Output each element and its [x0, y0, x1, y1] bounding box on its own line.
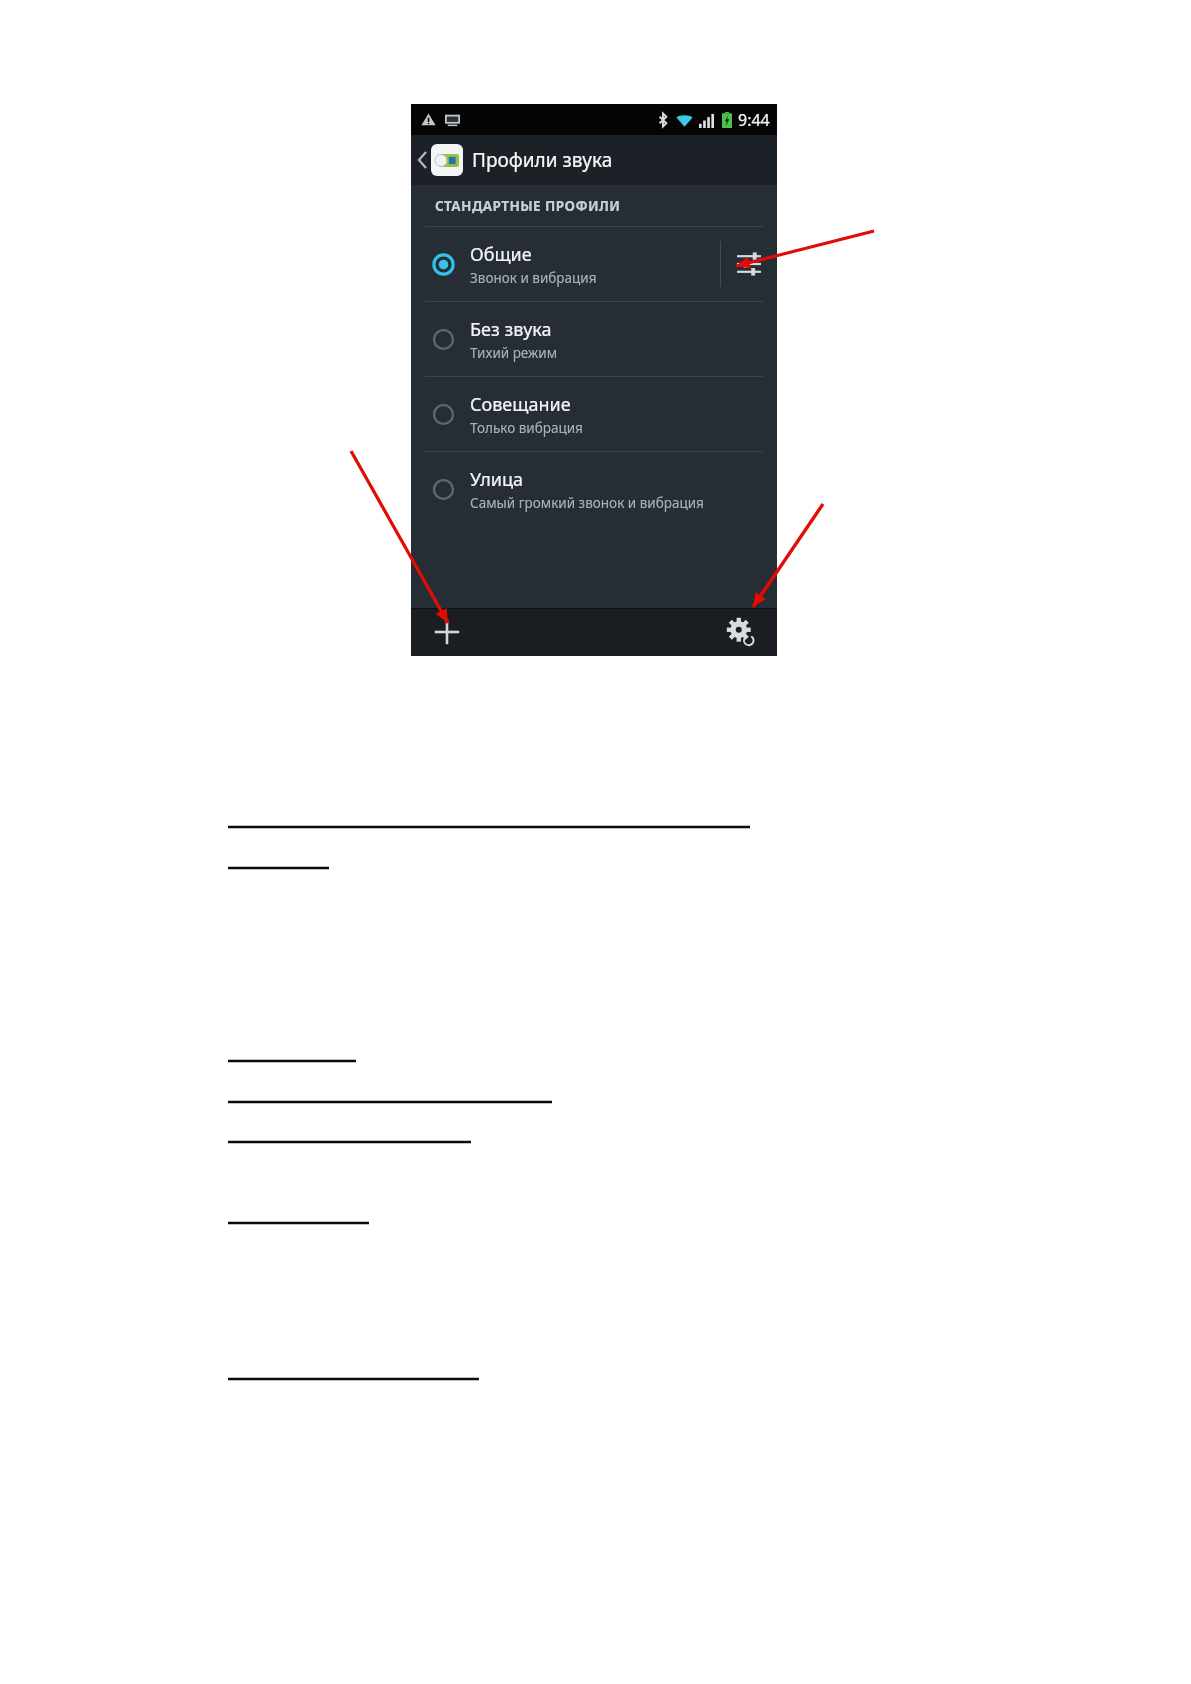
- staticText: СТАНДАРТНЫЕ ПРОФИЛИ: [435, 197, 621, 215]
- button[interactable]: Без звука: [411, 302, 763, 376]
- staticText: 9:44: [738, 109, 770, 131]
- staticText: Совещание: [470, 392, 571, 417]
- staticText: Улица: [470, 467, 523, 492]
- button[interactable]: Back: [411, 135, 777, 185]
- staticText: Общие: [470, 242, 532, 267]
- button[interactable]: Совещание: [411, 377, 763, 451]
- staticText: Только вибрация: [470, 419, 583, 437]
- button[interactable]: Profile settings: [721, 227, 777, 301]
- staticText: Профили звука: [472, 147, 613, 173]
- button[interactable]: Улица: [411, 452, 763, 526]
- button[interactable]: Общие: [411, 227, 720, 301]
- button[interactable]: Add profile: [411, 608, 483, 656]
- staticText: Тихий режим: [470, 344, 558, 362]
- staticText: Самый громкий звонок и вибрация: [470, 494, 704, 512]
- button[interactable]: Settings: [705, 608, 777, 656]
- staticText: Звонок и вибрация: [470, 269, 597, 287]
- other: Back: [417, 150, 428, 170]
- staticText: Без звука: [470, 317, 552, 342]
